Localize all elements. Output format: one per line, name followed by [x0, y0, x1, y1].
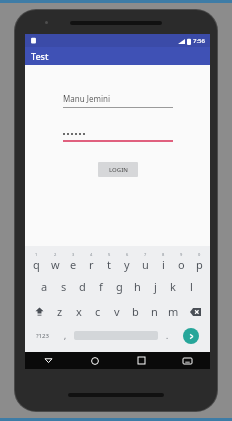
staticText: j	[154, 279, 157, 294]
staticText: h	[134, 279, 141, 294]
button[interactable]: k	[164, 274, 182, 299]
staticText: .	[166, 330, 169, 341]
staticText: 4	[90, 252, 93, 257]
button[interactable]: Shift	[27, 299, 51, 324]
button[interactable]: Switch keyboard	[164, 352, 210, 369]
staticText: ,	[64, 330, 67, 341]
button[interactable]: f	[92, 274, 110, 299]
staticText: b	[132, 304, 139, 319]
button[interactable]: Manu Jemini	[63, 93, 173, 108]
button[interactable]	[63, 129, 173, 142]
button[interactable]: 0	[190, 249, 208, 274]
staticText: z	[57, 304, 63, 319]
staticText: r	[89, 257, 94, 272]
button[interactable]: Backspace	[183, 299, 208, 324]
button[interactable]: j	[146, 274, 164, 299]
staticText: e	[70, 257, 77, 272]
staticText: 3	[72, 252, 75, 257]
staticText: 7	[144, 252, 147, 257]
button[interactable]: l	[182, 274, 200, 299]
staticText: Test	[31, 50, 49, 62]
button[interactable]: a	[35, 274, 54, 299]
staticText: 9	[180, 252, 183, 257]
button[interactable]: d	[73, 274, 92, 299]
staticText: x	[76, 304, 82, 319]
staticText: 8	[162, 252, 165, 257]
button[interactable]: m	[164, 299, 183, 324]
staticText: 6	[126, 252, 129, 257]
button[interactable]: 9	[172, 249, 190, 274]
button[interactable]: x	[69, 299, 88, 324]
staticText: 1	[35, 252, 38, 257]
button[interactable]: z	[51, 299, 69, 324]
staticText: ?123	[36, 332, 49, 340]
button[interactable]: 5	[100, 249, 118, 274]
staticText: u	[142, 257, 149, 272]
staticText: i	[162, 257, 165, 272]
button[interactable]: .	[158, 324, 176, 347]
staticText: m	[168, 304, 179, 319]
staticText: d	[79, 279, 86, 294]
staticText: s	[61, 279, 67, 294]
button[interactable]: 8	[154, 249, 172, 274]
staticText: 0	[198, 252, 201, 257]
button[interactable]: ,	[56, 324, 74, 347]
button[interactable]: g	[110, 274, 128, 299]
staticText: LOGIN	[109, 166, 128, 174]
button[interactable]: v	[107, 299, 126, 324]
button[interactable]: 6	[118, 249, 136, 274]
button[interactable]: n	[145, 299, 164, 324]
staticText: 7:56	[193, 37, 205, 45]
staticText: v	[114, 304, 120, 319]
staticText: l	[190, 279, 193, 294]
button[interactable]: ?123	[29, 324, 56, 347]
staticText: n	[151, 304, 158, 319]
staticText: k	[170, 279, 176, 294]
staticText: w	[51, 257, 60, 272]
staticText: 5	[108, 252, 111, 257]
button[interactable]: s	[54, 274, 73, 299]
button[interactable]: 1	[27, 249, 46, 274]
button[interactable]: 7	[136, 249, 154, 274]
staticText: y	[124, 257, 130, 272]
button[interactable]: 2	[46, 249, 64, 274]
button[interactable]: h	[128, 274, 146, 299]
staticText: g	[116, 279, 123, 294]
button[interactable]: b	[126, 299, 145, 324]
button[interactable]: LOGIN	[98, 162, 138, 177]
button[interactable]: Recents	[118, 352, 164, 369]
button[interactable]: 3	[64, 249, 82, 274]
staticText: c	[95, 304, 101, 319]
button[interactable]: Home	[72, 352, 118, 369]
button[interactable]: 4	[82, 249, 100, 274]
staticText: Manu Jemini	[63, 93, 110, 104]
staticText: o	[178, 257, 185, 272]
button[interactable]: Enter	[183, 328, 199, 344]
staticText: q	[33, 257, 40, 272]
staticText: a	[41, 279, 48, 294]
button[interactable]: c	[88, 299, 107, 324]
button[interactable]: Back	[25, 352, 72, 369]
staticText: t	[107, 257, 111, 272]
staticText: 2	[54, 252, 57, 257]
staticText: p	[196, 257, 203, 272]
staticText: f	[99, 279, 103, 294]
